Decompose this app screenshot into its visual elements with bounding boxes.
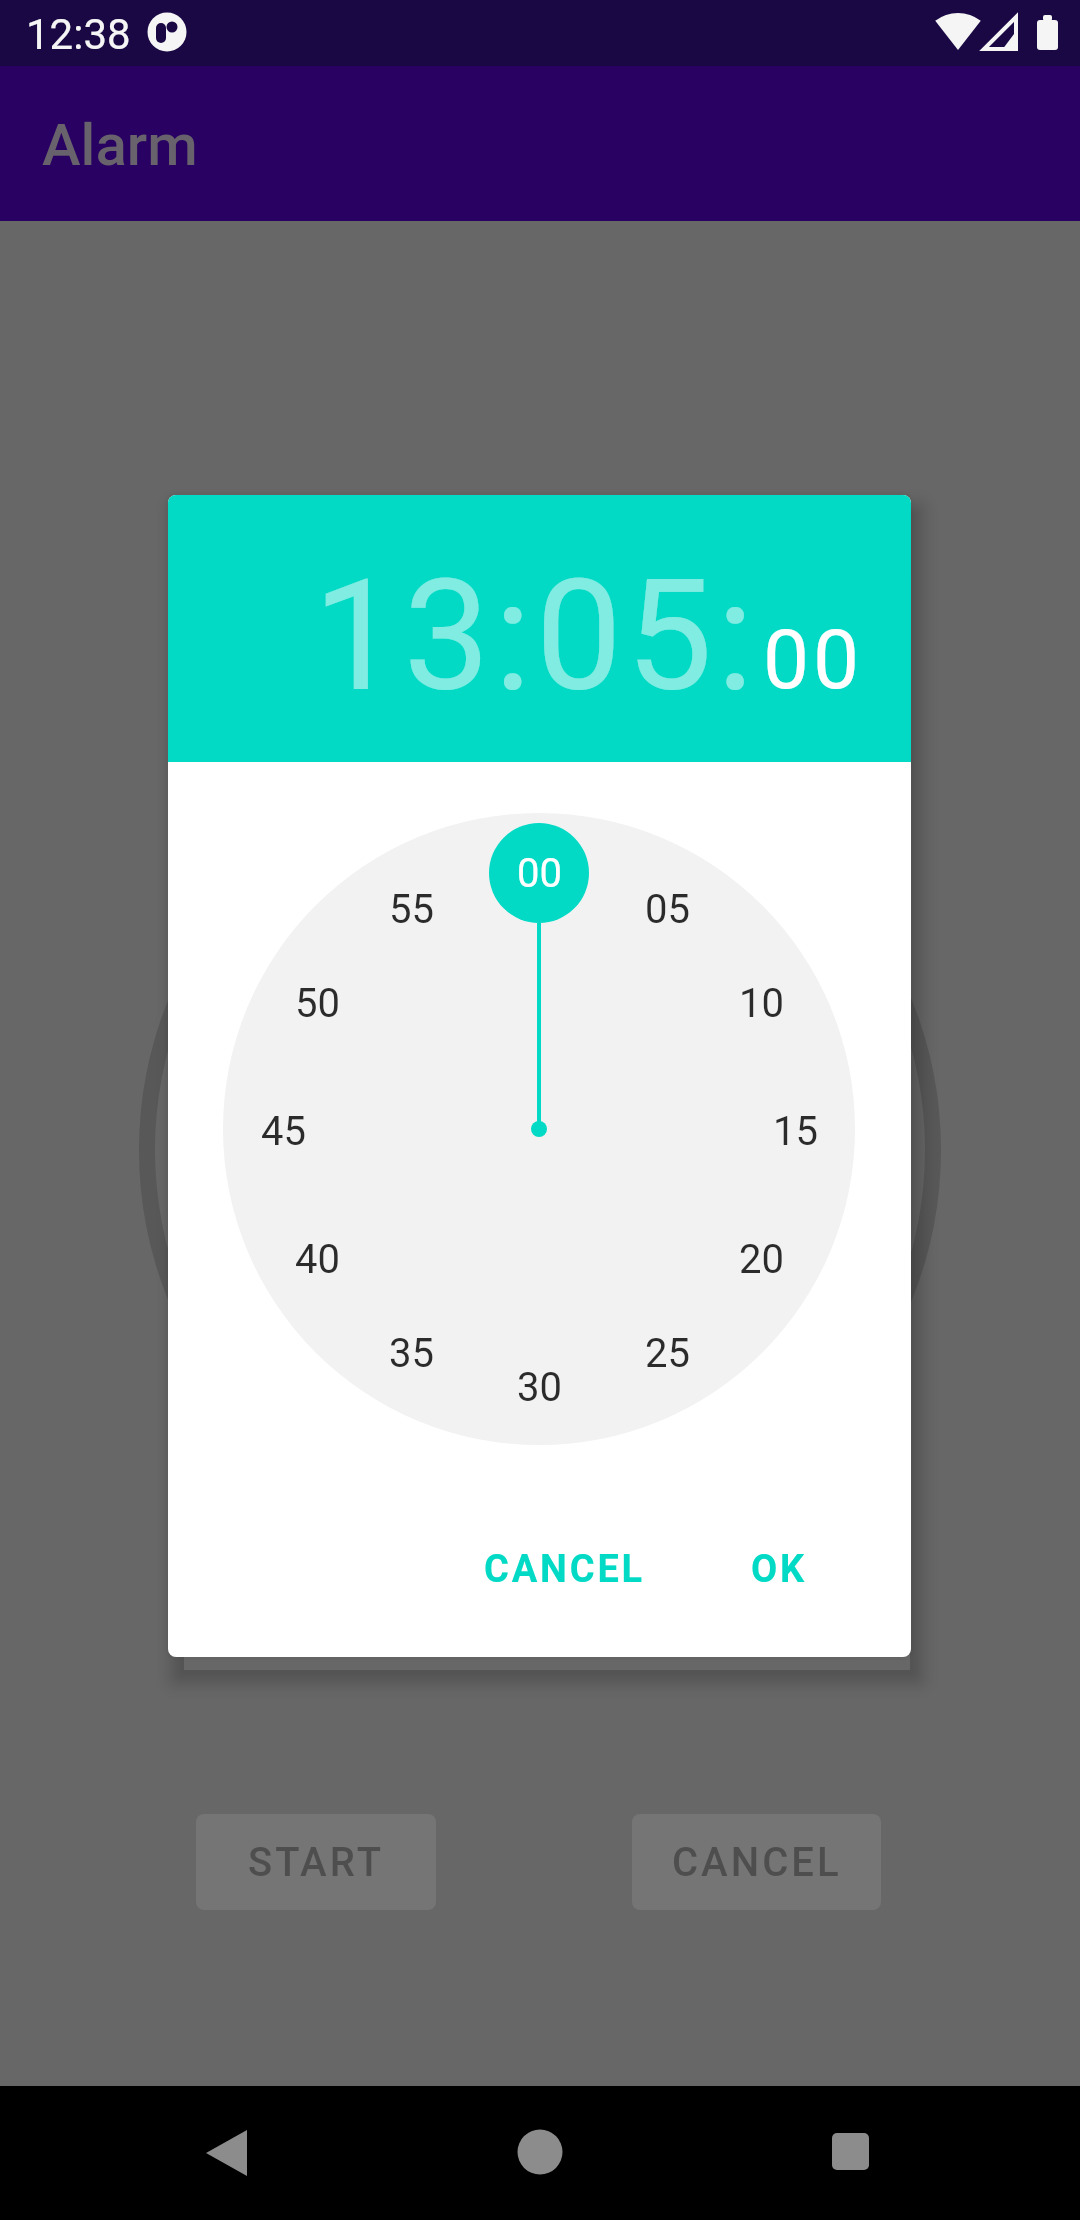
button[interactable]: CANCEL [454,1521,674,1617]
button[interactable]: OK [714,1521,844,1617]
staticText: 00 [517,850,562,897]
staticText: OK [751,1547,807,1592]
button[interactable]: START [196,1814,436,1910]
staticText: CANCEL [484,1547,645,1592]
staticText: CANCEL [672,1839,842,1886]
staticText: 00 [763,612,864,708]
staticText: Alarm [42,111,198,179]
staticText: 20 [739,1236,784,1283]
staticText: 15 [773,1108,818,1155]
staticText: 13:05: [313,546,758,726]
staticText: 12:38 [26,10,131,59]
staticText: 35 [389,1330,434,1377]
staticText: START [248,1839,385,1886]
staticText: 05 [645,886,690,933]
staticText: 30 [517,1364,562,1411]
staticText: 25 [645,1330,690,1377]
button[interactable] [810,2133,890,2173]
button[interactable] [500,2133,580,2173]
staticText: 50 [295,980,340,1027]
button[interactable]: CANCEL [632,1814,881,1910]
staticText: 40 [295,1236,340,1283]
staticText: 10 [739,980,784,1027]
staticText: 55 [389,886,434,933]
button[interactable] [186,2133,266,2173]
staticText: 45 [261,1108,306,1155]
